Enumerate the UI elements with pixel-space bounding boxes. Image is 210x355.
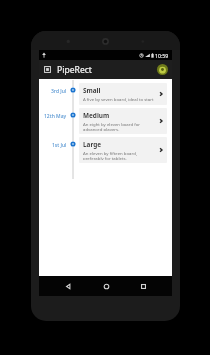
staticText: 10:59 [155, 52, 169, 59]
staticText: Small [83, 86, 101, 95]
staticText: An eight by eleven board for advanced pl… [83, 121, 157, 131]
button[interactable]: Recent apps [135, 278, 151, 294]
staticText: 12th May [44, 113, 67, 120]
button[interactable]: Home [98, 278, 114, 294]
button[interactable]: Medium [79, 108, 167, 134]
staticText: A five by seven board, ideal to start wi… [83, 96, 157, 102]
staticText: PipeRect [57, 64, 92, 76]
staticText: Large [83, 140, 102, 149]
button[interactable]: Open navigation drawer [41, 63, 54, 76]
button[interactable]: Large [79, 137, 167, 163]
button[interactable]: Account [156, 63, 169, 76]
staticText: Medium [83, 111, 110, 120]
button[interactable]: Back [60, 278, 76, 294]
staticText: 3rd Jul [51, 88, 67, 95]
staticText: 1st Jul [52, 142, 67, 149]
staticText: An eleven by fifteen board, preferably f… [83, 150, 157, 160]
button[interactable]: Small [79, 83, 167, 105]
